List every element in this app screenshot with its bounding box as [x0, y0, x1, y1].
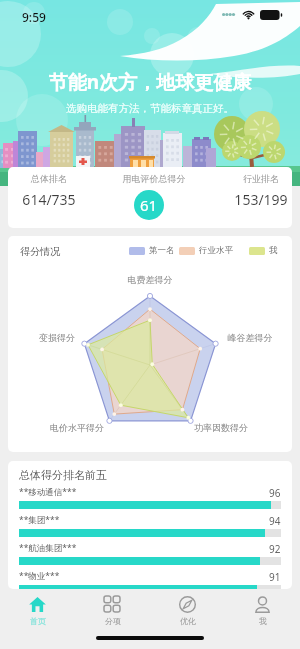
button[interactable]: Profile [225, 590, 300, 632]
staticText: 总体得分排名前五 [19, 468, 107, 482]
staticText: 行业排名 [236, 173, 286, 184]
staticText: 节能n次方，地球更健康 [0, 69, 300, 95]
staticText: 第一名 [149, 245, 175, 256]
staticText: 电费差得分 [120, 274, 180, 285]
staticText: **移动通信*** [19, 486, 77, 498]
staticText: 变损得分 [27, 332, 87, 343]
button[interactable]: Optimize [150, 590, 225, 632]
staticText: 行业水平 [199, 245, 233, 256]
staticText: 得分情况 [20, 245, 60, 258]
staticText: 我 [259, 616, 267, 626]
staticText: 96 [269, 486, 281, 500]
staticText: 92 [269, 542, 281, 556]
staticText: 分项 [105, 616, 121, 626]
staticText: 153/199 [228, 190, 292, 209]
button[interactable]: 总体排名 [8, 167, 292, 228]
staticText: 首页 [30, 616, 46, 626]
staticText: 61 [140, 195, 158, 215]
button[interactable]: Categories [75, 590, 150, 632]
staticText: 614/735 [16, 190, 82, 209]
staticText: 电价水平得分 [44, 422, 110, 433]
staticText: 91 [269, 570, 281, 584]
staticText: 峰谷差得分 [220, 332, 280, 343]
staticText: 选购电能有方法，节能标章真正好。 [0, 102, 300, 115]
staticText: 我 [269, 245, 278, 256]
staticText: **集团*** [19, 514, 60, 526]
staticText: **航油集团*** [19, 542, 77, 554]
staticText: **物业*** [19, 570, 60, 582]
button[interactable]: Home [0, 590, 75, 632]
staticText: 总体排名 [24, 173, 74, 184]
staticText: 优化 [180, 616, 196, 626]
staticText: 用电评价总得分 [114, 173, 194, 184]
staticText: 功率因数得分 [188, 422, 254, 433]
staticText: 9:59 [22, 9, 46, 25]
staticText: 94 [269, 514, 281, 528]
